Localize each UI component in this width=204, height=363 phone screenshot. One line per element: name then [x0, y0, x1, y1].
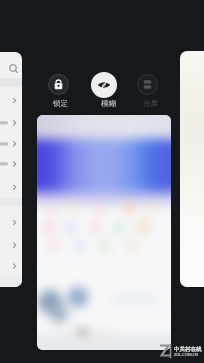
button[interactable] — [137, 74, 158, 95]
button[interactable] — [91, 72, 117, 98]
staticText: 中关村在线 — [174, 346, 202, 353]
staticText: ZOL.COM.CN — [174, 352, 198, 357]
staticText: 分屏 — [143, 99, 158, 108]
button[interactable] — [0, 52, 22, 287]
button[interactable] — [48, 74, 69, 95]
staticText: 锁定 — [53, 99, 68, 108]
staticText: 模糊 — [101, 99, 116, 108]
button[interactable] — [37, 115, 171, 350]
button[interactable] — [180, 51, 204, 287]
